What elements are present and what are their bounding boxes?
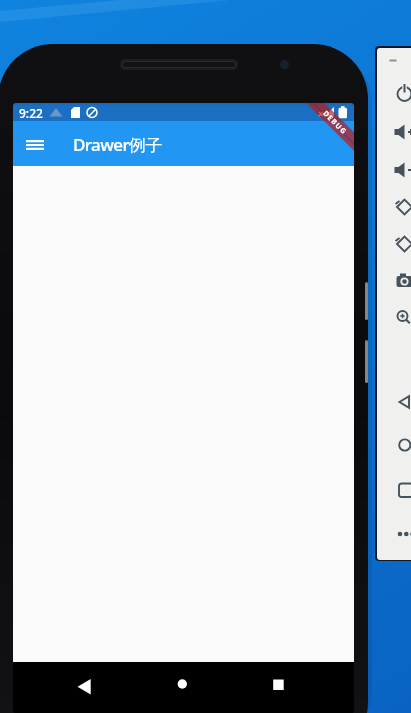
button[interactable] bbox=[387, 475, 411, 505]
button[interactable] bbox=[387, 387, 411, 417]
button[interactable] bbox=[64, 666, 104, 713]
button[interactable] bbox=[162, 666, 202, 713]
button[interactable] bbox=[387, 301, 411, 331]
button[interactable] bbox=[387, 155, 411, 185]
staticText: 9:22 bbox=[19, 105, 43, 121]
button[interactable] bbox=[258, 666, 298, 713]
button[interactable] bbox=[387, 117, 411, 147]
button[interactable] bbox=[387, 266, 411, 296]
button[interactable] bbox=[387, 430, 411, 460]
button[interactable] bbox=[387, 79, 411, 109]
button[interactable] bbox=[387, 229, 411, 259]
button[interactable] bbox=[387, 192, 411, 222]
button[interactable] bbox=[387, 519, 411, 549]
staticText: Drawer例子 bbox=[73, 133, 162, 156]
button[interactable] bbox=[21, 131, 49, 159]
staticText: DEBUG bbox=[320, 109, 349, 138]
